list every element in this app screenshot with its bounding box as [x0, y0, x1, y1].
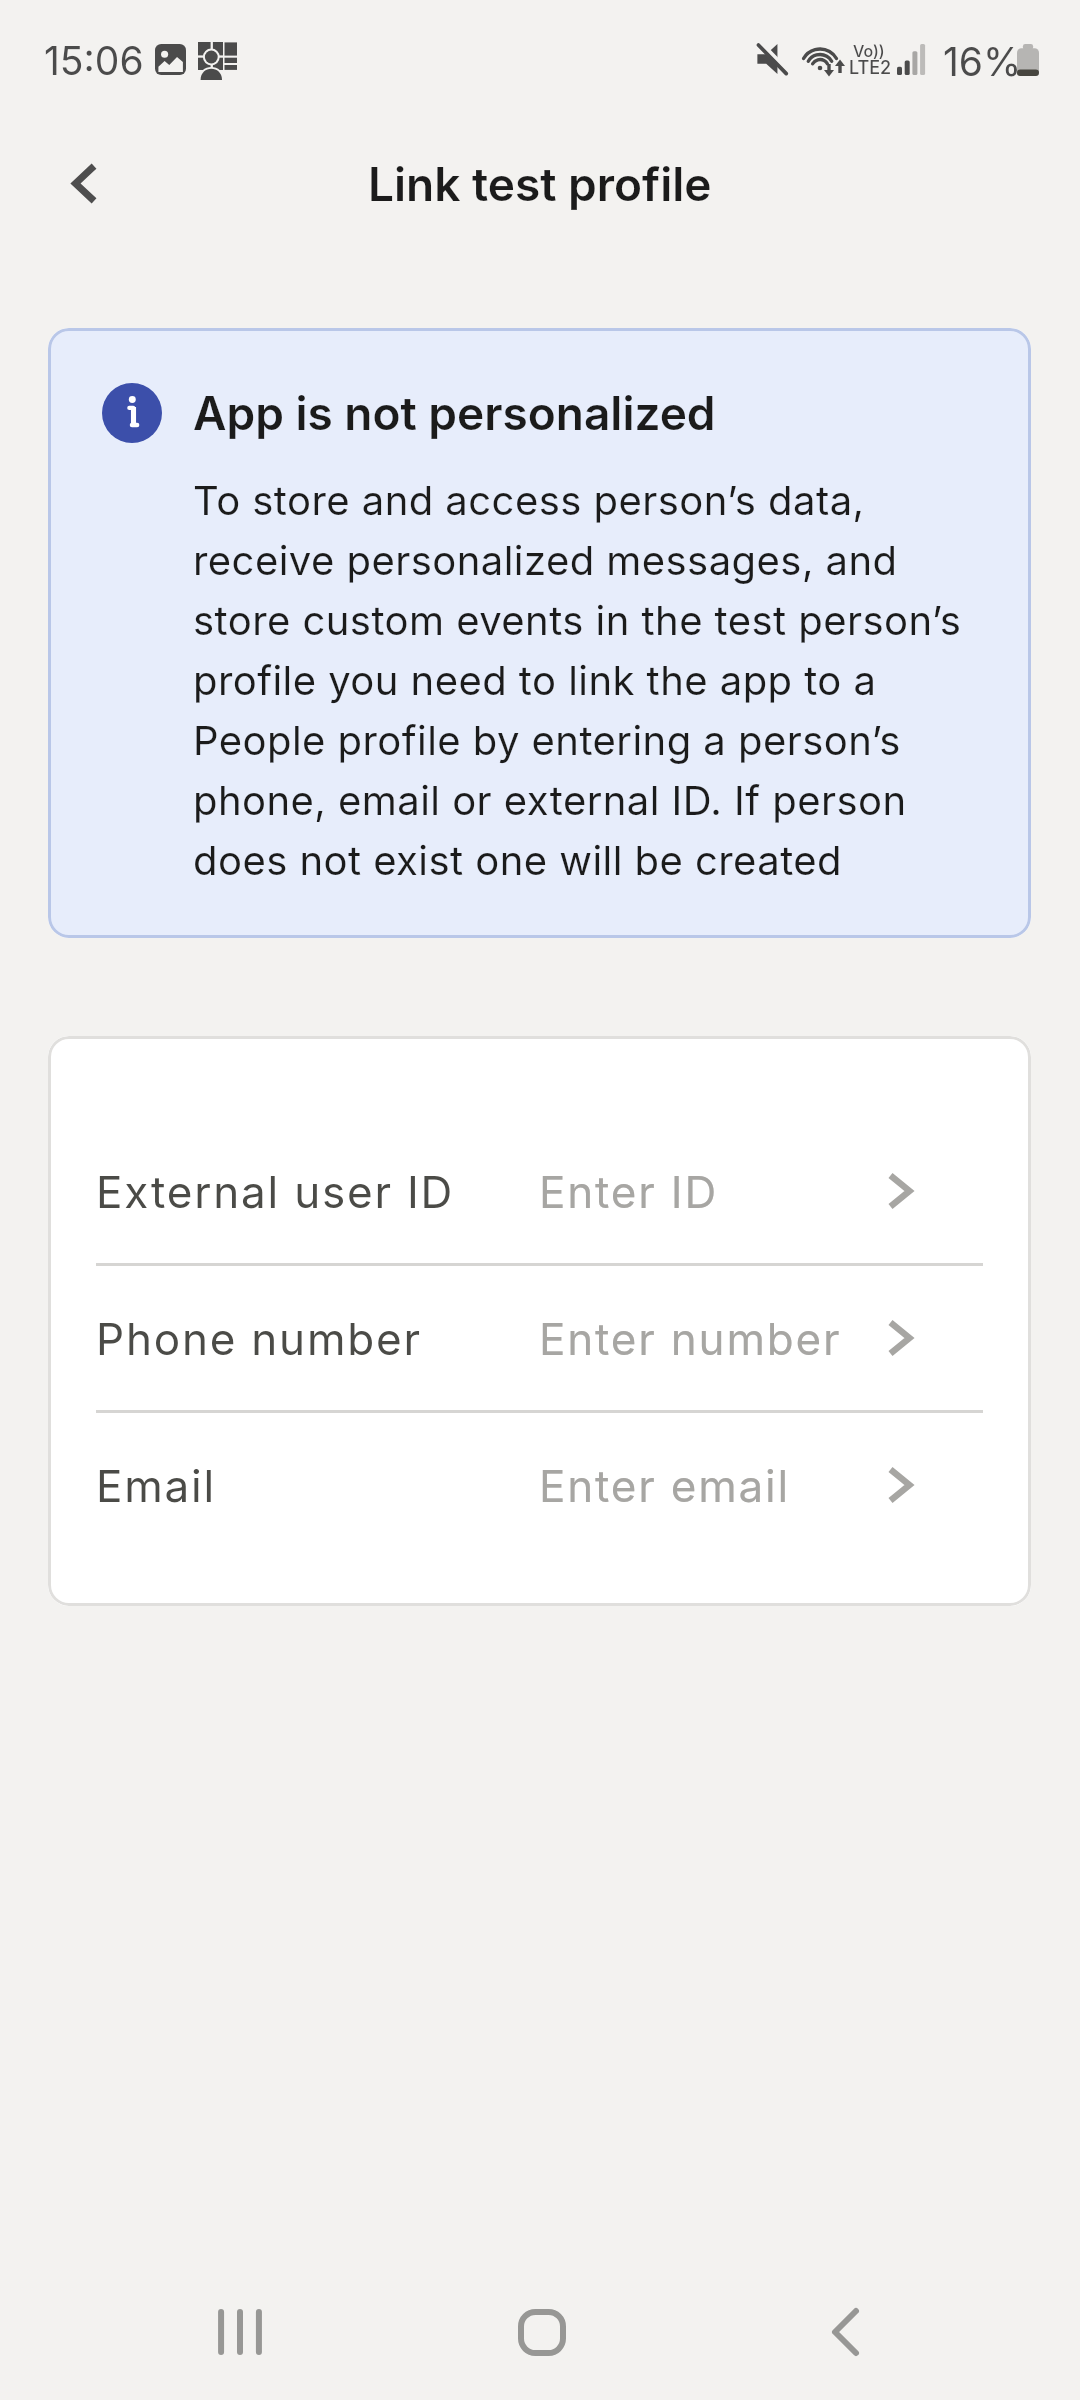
button[interactable]: Home — [482, 2272, 602, 2392]
staticText: Email — [96, 1459, 217, 1512]
staticText: Vo)) — [853, 41, 885, 60]
staticText: 15:06 — [44, 37, 144, 84]
button[interactable]: Navigate back — [33, 133, 133, 233]
staticText: Phone number — [96, 1312, 422, 1365]
staticText: Link test profile — [368, 156, 712, 212]
button[interactable]: Phone number — [48, 1266, 1031, 1410]
staticText: LTE2 — [849, 57, 892, 79]
staticText: To store and access person’s data, recei… — [193, 476, 983, 885]
button[interactable]: Email — [48, 1413, 1031, 1557]
staticText: Enter ID — [539, 1165, 718, 1218]
staticText: App is not personalized — [193, 385, 716, 441]
button[interactable]: Recent apps — [180, 2272, 300, 2392]
staticText: Enter number — [539, 1312, 842, 1365]
button[interactable]: External user ID — [48, 1119, 1031, 1263]
button[interactable]: Back — [785, 2272, 905, 2392]
staticText: Enter email — [539, 1459, 791, 1512]
staticText: External user ID — [96, 1165, 455, 1218]
staticText: 16% — [943, 38, 1022, 85]
